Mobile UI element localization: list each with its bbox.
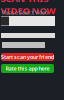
button[interactable]: Start scan your friend [1,53,54,61]
staticText: Rate this app here [5,65,49,72]
staticText: Start scan your friend [1,53,54,61]
staticText: Please Select Video [2,9,48,16]
staticText: SCAN THIS VIDEO NOW [0,0,55,17]
button[interactable]: Rate this app here [1,64,54,73]
